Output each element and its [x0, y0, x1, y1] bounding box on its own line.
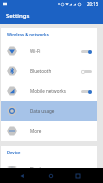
button[interactable]: Bluetooth [1, 61, 97, 81]
button[interactable]: More [1, 121, 97, 141]
staticText: Wireless & networks [7, 32, 49, 38]
staticText: Bluetooth [30, 68, 81, 74]
staticText: Settings [6, 12, 30, 20]
button[interactable]: Display [1, 166, 97, 168]
staticText: More [30, 128, 92, 134]
button[interactable]: Recent apps [71, 169, 84, 182]
staticText: Display [30, 166, 92, 168]
button[interactable]: Data usage [1, 101, 97, 121]
staticText: 20:15 [87, 1, 99, 7]
button[interactable]: Mobile networks [1, 81, 97, 101]
staticText: Mobile networks [30, 88, 81, 94]
staticText: Device [7, 150, 21, 156]
staticText: Wi-Fi [30, 48, 81, 54]
button[interactable]: Back [15, 169, 28, 182]
staticText: Data usage [30, 108, 92, 114]
button[interactable]: Home [44, 169, 57, 182]
button[interactable]: Wi-Fi [1, 41, 97, 61]
